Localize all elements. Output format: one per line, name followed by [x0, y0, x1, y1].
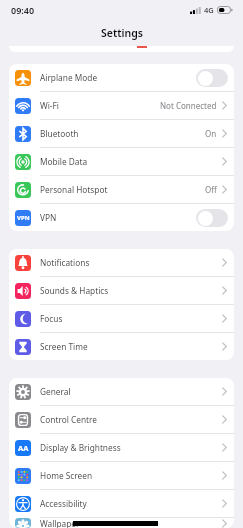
staticText: Off — [205, 184, 217, 195]
staticText: Airplane Mode — [40, 72, 98, 83]
button[interactable]: Personal Hotspot — [9, 176, 234, 203]
staticText: Wi-Fi — [40, 100, 59, 111]
staticText: Control Centre — [40, 414, 97, 425]
staticText: Personal Hotspot — [40, 184, 108, 195]
staticText: AA — [18, 443, 29, 453]
staticText: VPN — [17, 214, 30, 222]
staticText: VPN — [40, 212, 57, 223]
button[interactable]: VPN — [196, 209, 228, 227]
staticText: Not Connected — [160, 100, 217, 111]
staticText: Display & Brightness — [40, 442, 121, 453]
staticText: Accessibility — [40, 498, 87, 509]
staticText: General — [40, 386, 71, 397]
staticText: Screen Time — [40, 341, 88, 352]
button[interactable]: Wi-Fi — [9, 92, 234, 119]
button[interactable]: Airplane Mode — [9, 64, 234, 91]
button[interactable]: Wallpaper — [9, 518, 234, 528]
button[interactable]: Sounds & Haptics — [9, 277, 234, 304]
staticText: Settings — [101, 26, 143, 40]
button[interactable]: Notifications — [9, 249, 234, 276]
staticText: Bluetooth — [40, 128, 79, 139]
button[interactable]: Accessibility — [9, 490, 234, 517]
staticText: Notifications — [40, 257, 90, 268]
staticText: Home Screen — [40, 470, 93, 481]
button[interactable]: Home Screen — [9, 462, 234, 489]
button[interactable]: Screen Time — [9, 333, 234, 360]
staticText: 09:40 — [11, 4, 35, 16]
staticText: Wallpaper — [40, 518, 80, 528]
button[interactable]: Bluetooth — [9, 120, 234, 147]
staticText: Focus — [40, 313, 63, 324]
button[interactable]: Airplane Mode — [196, 69, 228, 87]
staticText: 4G — [204, 5, 214, 15]
button[interactable]: AA — [9, 434, 234, 461]
button[interactable]: Mobile Data — [9, 148, 234, 175]
staticText: Mobile Data — [40, 156, 88, 167]
staticText: On — [205, 128, 217, 139]
button[interactable]: Control Centre — [9, 406, 234, 433]
button[interactable]: VPN — [9, 204, 234, 231]
button[interactable]: Focus — [9, 305, 234, 332]
staticText: Sounds & Haptics — [40, 285, 109, 296]
button[interactable]: General — [9, 378, 234, 405]
